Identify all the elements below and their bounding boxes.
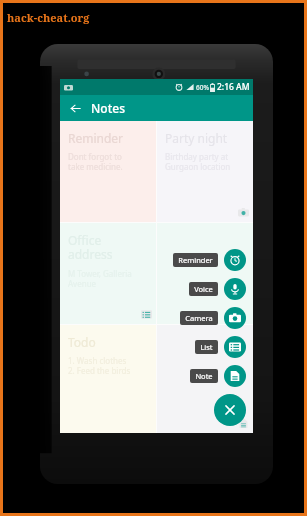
button[interactable]: Party night bbox=[157, 121, 253, 222]
staticText: Note bbox=[195, 371, 213, 381]
button[interactable]: Office address bbox=[60, 223, 156, 324]
staticText: Dont forgot to take medicine. bbox=[68, 151, 123, 172]
staticText: Todo bbox=[68, 334, 96, 350]
button[interactable]: Reminder bbox=[173, 249, 246, 271]
button[interactable]: Reminder bbox=[60, 121, 156, 222]
button[interactable]: Camera bbox=[224, 307, 246, 329]
staticText: Office address bbox=[68, 232, 113, 263]
button[interactable] bbox=[157, 325, 253, 433]
staticText: 60% bbox=[196, 83, 209, 92]
button[interactable]: Reminder bbox=[224, 249, 246, 271]
staticText: Voice bbox=[194, 284, 213, 294]
button[interactable]: Todo bbox=[60, 325, 156, 433]
button[interactable]: Close menu bbox=[214, 394, 246, 426]
staticText: Notes bbox=[91, 100, 125, 116]
staticText: Camera bbox=[185, 313, 213, 323]
staticText: List bbox=[200, 342, 213, 352]
button[interactable] bbox=[157, 223, 253, 324]
staticText: hack-cheat.org bbox=[7, 10, 90, 25]
staticText: 2:16 AM bbox=[217, 81, 250, 93]
staticText: Party night bbox=[165, 130, 228, 146]
staticText: Reminder bbox=[178, 255, 213, 265]
button[interactable]: Note bbox=[224, 365, 246, 387]
button[interactable]: Note bbox=[190, 365, 246, 387]
button[interactable]: Camera bbox=[180, 307, 246, 329]
button[interactable]: List bbox=[195, 336, 246, 358]
staticText: Birthday party at Gurgaon location bbox=[165, 151, 231, 172]
button[interactable]: Voice bbox=[224, 278, 246, 300]
button[interactable]: Back bbox=[66, 99, 84, 117]
staticText: M Tower, Galleria Avenue bbox=[68, 268, 132, 289]
staticText: 1. Wash clothes 2. Feed the birds bbox=[68, 355, 131, 376]
button[interactable]: List bbox=[224, 336, 246, 358]
staticText: Reminder bbox=[68, 130, 124, 146]
button[interactable]: Voice bbox=[189, 278, 246, 300]
